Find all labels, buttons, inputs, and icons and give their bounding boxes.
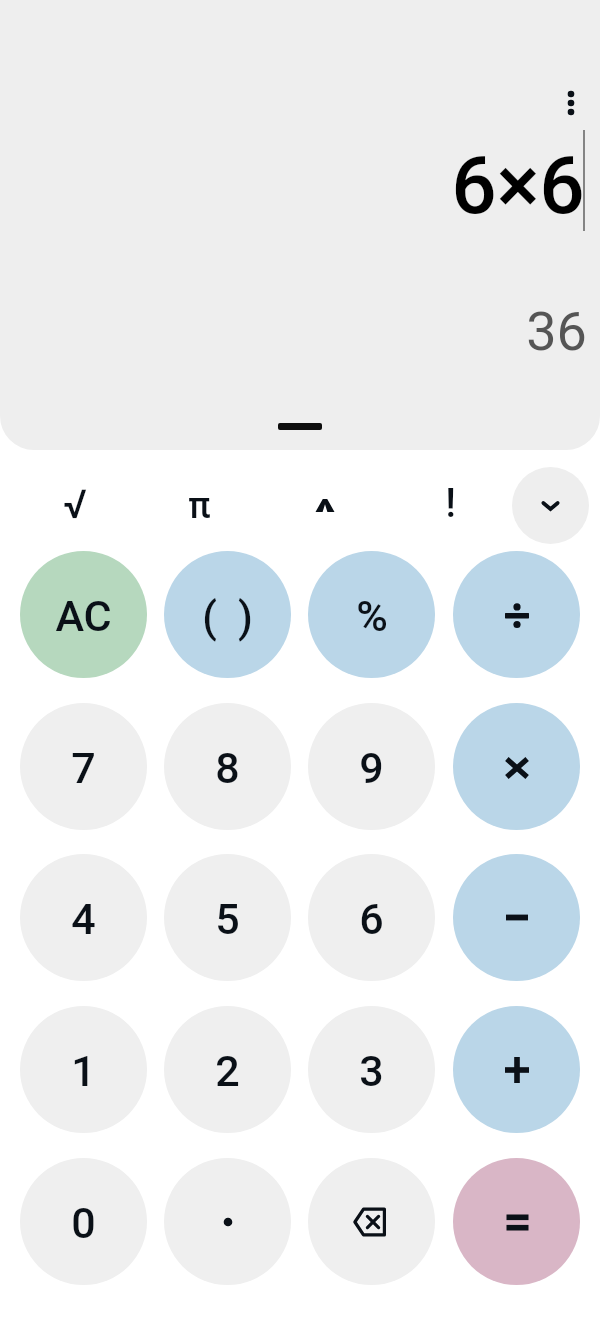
- staticText: AC: [55, 591, 112, 641]
- staticText: 7: [71, 743, 96, 793]
- button[interactable]: 7: [20, 703, 147, 830]
- staticText: 3: [359, 1046, 384, 1096]
- button[interactable]: Divide: [453, 551, 580, 678]
- button[interactable]: AC: [20, 551, 147, 678]
- staticText: 1: [71, 1046, 96, 1096]
- staticText: 9: [359, 743, 384, 793]
- button[interactable]: 4: [20, 854, 147, 981]
- staticText: 8: [215, 743, 240, 793]
- button[interactable]: ( ): [164, 551, 291, 678]
- staticText: π: [188, 485, 211, 527]
- staticText: 6×6: [451, 139, 585, 233]
- staticText: 2: [215, 1046, 240, 1096]
- button[interactable]: Collapse keypad: [512, 467, 589, 544]
- staticText: 5: [215, 894, 240, 944]
- staticText: 0: [71, 1198, 96, 1248]
- button[interactable]: More options: [542, 74, 600, 132]
- button[interactable]: Expand display: [278, 423, 322, 430]
- button[interactable]: 5: [164, 854, 291, 981]
- button[interactable]: Square root: [45, 466, 105, 543]
- button[interactable]: 3: [308, 1006, 435, 1133]
- button[interactable]: 9: [308, 703, 435, 830]
- staticText: %: [356, 591, 388, 641]
- button[interactable]: 0: [20, 1158, 147, 1285]
- button[interactable]: Power: [295, 467, 355, 544]
- button[interactable]: Backspace: [308, 1158, 435, 1285]
- button[interactable]: Pi: [169, 467, 229, 544]
- button[interactable]: 6: [308, 854, 435, 981]
- button[interactable]: Subtract: [453, 854, 580, 981]
- button[interactable]: Factorial: [420, 465, 480, 542]
- button[interactable]: %: [308, 551, 435, 678]
- button[interactable]: Add: [453, 1006, 580, 1133]
- button[interactable]: Multiply: [453, 703, 580, 830]
- staticText: ( ): [202, 593, 253, 642]
- button[interactable]: 2: [164, 1006, 291, 1133]
- button[interactable]: 8: [164, 703, 291, 830]
- staticText: √: [63, 481, 87, 528]
- staticText: 6: [359, 894, 384, 944]
- staticText: !: [445, 480, 456, 527]
- staticText: 36: [526, 300, 587, 363]
- button[interactable]: Equals: [453, 1158, 580, 1285]
- button[interactable]: 1: [20, 1006, 147, 1133]
- button[interactable]: Decimal point: [164, 1158, 291, 1285]
- staticText: 4: [71, 894, 96, 944]
